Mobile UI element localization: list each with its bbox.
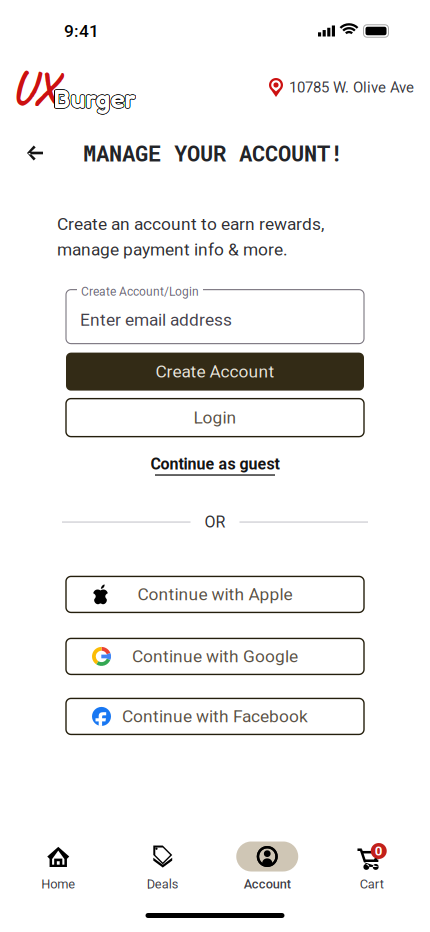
staticText: Burger [53,82,135,114]
staticText: Create Account/Login [81,285,199,299]
staticText: Login [193,407,236,428]
staticText: 9:41 [64,21,99,41]
staticText: Burger [53,82,135,114]
button[interactable]: Login [66,399,364,437]
staticText: Cart [360,876,384,891]
staticText: MANAGE YOUR ACCOUNT! [83,138,343,168]
button[interactable]: Continue as guest [150,451,279,480]
staticText: Account [244,876,291,891]
staticText: Burger [54,82,136,114]
staticText: Burger [54,83,136,115]
staticText: Continue with Google [132,646,298,667]
button[interactable]: Continue with Facebook [66,698,364,734]
button[interactable]: Back [13,131,57,175]
button[interactable]: 10785 W. Olive Ave [269,78,414,97]
staticText: manage payment info & more. [57,239,288,260]
staticText: Deals [147,876,179,891]
staticText: Burger [53,82,135,114]
staticText: Create an account to earn rewards, [57,214,324,234]
button[interactable]: Continue with Google [66,638,364,674]
staticText: Create Account [155,361,274,382]
button[interactable]: Continue with Apple [66,576,364,612]
staticText: Enter email address [80,310,232,330]
staticText: Burger [53,83,135,115]
staticText: Home [41,876,75,891]
staticText: Burger [54,82,136,114]
staticText: Continue with Facebook [122,706,308,727]
staticText: Burger [53,82,135,114]
staticText: Continue as guest [150,455,279,473]
staticText: UX [11,58,57,117]
button[interactable]: Deals [110,841,215,891]
staticText: Continue with Apple [137,584,292,605]
button[interactable]: Account [215,841,319,891]
staticText: OR [204,513,225,531]
staticText: 10785 W. Olive Ave [289,79,414,96]
button[interactable]: Create Account [66,353,364,391]
staticText: 0 [375,843,383,859]
button[interactable]: Home [6,841,110,891]
button[interactable]: 0 [319,841,424,891]
staticText: Burger [53,83,135,115]
